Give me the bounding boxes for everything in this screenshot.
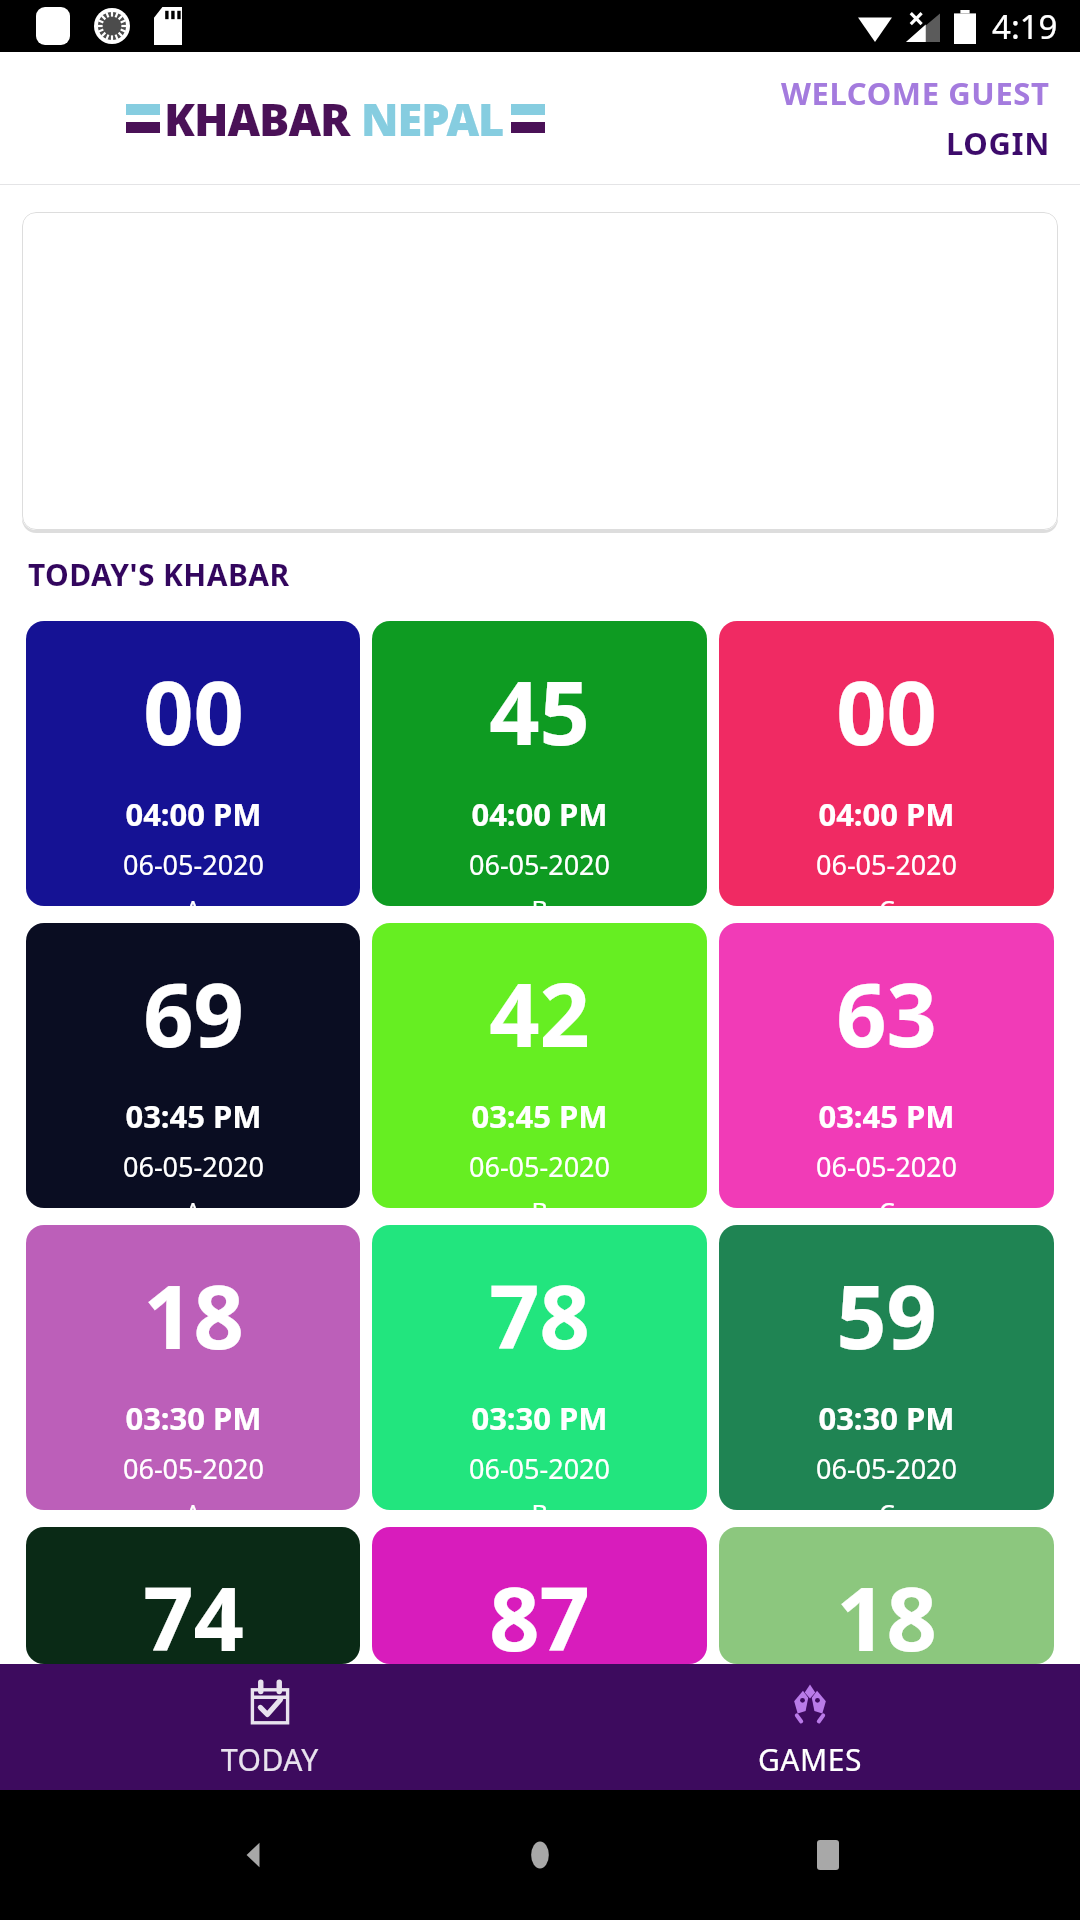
staticText: 04:00 PM	[471, 793, 608, 835]
staticText: 06-05-2020	[816, 846, 957, 883]
staticText: 03:45 PM	[125, 1095, 262, 1137]
button[interactable]: 74	[26, 1527, 360, 1664]
staticText: NEPAL	[361, 88, 504, 149]
button[interactable]: 69	[26, 923, 360, 1208]
button[interactable]: 87	[372, 1527, 707, 1664]
button[interactable]: 59	[719, 1225, 1054, 1510]
staticText: 18	[836, 1557, 937, 1664]
button[interactable]: 78	[372, 1225, 707, 1510]
staticText: 03:45 PM	[818, 1095, 955, 1137]
button[interactable]: 00	[719, 621, 1054, 906]
staticText: C	[879, 1496, 895, 1510]
staticText: 03:30 PM	[818, 1397, 955, 1439]
staticText: A	[185, 1496, 201, 1510]
staticText: 03:30 PM	[471, 1397, 608, 1439]
staticText: 59	[836, 1255, 937, 1375]
staticText: TODAY	[221, 1739, 319, 1780]
staticText: 18	[143, 1255, 244, 1375]
staticText: KHABAR	[164, 88, 350, 149]
button[interactable]	[22, 212, 1058, 530]
staticText: 87	[489, 1557, 590, 1664]
staticText: B	[531, 1194, 548, 1208]
staticText: A	[185, 1194, 201, 1208]
staticText: 06-05-2020	[123, 846, 264, 883]
staticText: 00	[143, 651, 244, 771]
staticText: B	[531, 892, 548, 906]
staticText: 06-05-2020	[469, 1450, 610, 1487]
staticText: TODAY'S KHABAR	[28, 554, 290, 595]
staticText: GAMES	[758, 1739, 862, 1780]
button[interactable]: GAMES	[540, 1664, 1080, 1790]
staticText: 45	[489, 651, 590, 771]
staticText: 06-05-2020	[816, 1148, 957, 1185]
button[interactable]: 18	[26, 1225, 360, 1510]
button[interactable]: LOGIN	[946, 122, 1050, 164]
staticText: B	[531, 1496, 548, 1510]
staticText: 42	[489, 953, 590, 1073]
button[interactable]: 18	[719, 1527, 1054, 1664]
staticText: 04:00 PM	[125, 793, 262, 835]
staticText: 06-05-2020	[469, 1148, 610, 1185]
staticText: 06-05-2020	[469, 846, 610, 883]
staticText: C	[879, 1194, 895, 1208]
button[interactable]: Home	[504, 1819, 576, 1891]
staticText: 03:45 PM	[471, 1095, 608, 1137]
button[interactable]: 45	[372, 621, 707, 906]
button[interactable]: 63	[719, 923, 1054, 1208]
staticText: 06-05-2020	[123, 1148, 264, 1185]
staticText: 04:00 PM	[818, 793, 955, 835]
button[interactable]: Back	[216, 1819, 288, 1891]
staticText: 78	[489, 1255, 590, 1375]
staticText: 4:19	[992, 4, 1058, 49]
staticText: 63	[836, 953, 937, 1073]
staticText: 00	[836, 651, 937, 771]
staticText: C	[879, 892, 895, 906]
staticText: 03:30 PM	[125, 1397, 262, 1439]
button[interactable]: WELCOME GUEST	[781, 72, 1050, 114]
button[interactable]: KHABAR	[126, 88, 545, 149]
button[interactable]: TODAY	[0, 1664, 540, 1790]
staticText: 74	[143, 1557, 244, 1664]
staticText: 69	[143, 953, 244, 1073]
button[interactable]: Recent apps	[792, 1819, 864, 1891]
button[interactable]: 42	[372, 923, 707, 1208]
staticText: 06-05-2020	[123, 1450, 264, 1487]
button[interactable]: 00	[26, 621, 360, 906]
staticText: 06-05-2020	[816, 1450, 957, 1487]
staticText: A	[185, 892, 201, 906]
